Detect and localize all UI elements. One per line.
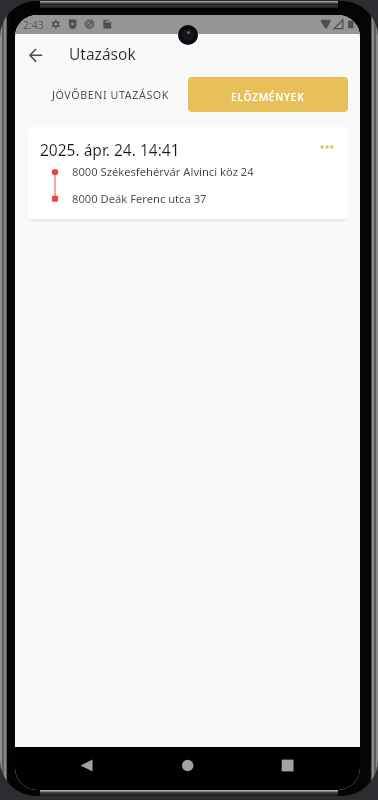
staticText: 8000 Deák Ferenc utca 37 [72,191,207,206]
staticText: ELŐZMÉNYEK [231,90,305,104]
button[interactable]: 2025. ápr. 24. 14:41 [27,127,348,219]
staticText: 2025. ápr. 24. 14:41 [40,139,180,160]
button[interactable]: More options [314,134,340,160]
staticText: 8000 Székesfehérvár Alvinci köz 24 [72,164,254,179]
button[interactable]: ELŐZMÉNYEK [188,77,348,112]
staticText: JÖVŐBENI UTAZÁSOK [52,88,170,103]
button[interactable]: JÖVŐBENI UTAZÁSOK [31,78,192,112]
staticText: Utazások [69,43,136,64]
button[interactable]: Back [17,36,55,74]
staticText: 2:43 [23,18,44,32]
